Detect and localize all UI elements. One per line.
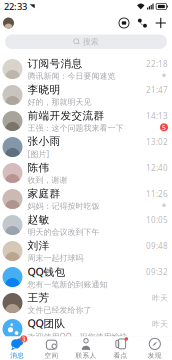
staticText: 搜索 <box>83 37 99 47</box>
staticText: 看点 <box>113 351 127 360</box>
staticText: 订阅号消息 <box>27 57 82 70</box>
button[interactable]: 3 <box>0 336 34 360</box>
staticText: 10:05 <box>146 215 168 225</box>
button[interactable]: 陈伟 <box>0 160 172 186</box>
staticText: 收到，谢谢 <box>27 175 67 185</box>
staticText: QQ钱包 <box>27 264 65 279</box>
staticText: 5 <box>162 123 166 132</box>
button[interactable]: 张小雨 <box>0 134 172 160</box>
staticText: 前端开发交流群 <box>27 109 104 122</box>
button[interactable]: Profile <box>1 13 18 32</box>
staticText: 11:26 <box>146 189 168 199</box>
staticText: 14:13 <box>146 111 168 121</box>
button[interactable]: 发现 <box>138 336 172 360</box>
button[interactable]: 李晓明 <box>0 82 172 108</box>
staticText: 09:48 <box>146 241 168 251</box>
staticText: 09:32 <box>146 267 168 277</box>
button[interactable]: 搜索 <box>0 33 172 56</box>
button[interactable]: QQ团队 <box>0 316 172 342</box>
button[interactable]: 联系人 <box>69 336 103 360</box>
button[interactable]: Scan <box>115 14 133 32</box>
staticText: [图片] <box>27 149 49 159</box>
staticText: 09:02 <box>146 345 168 355</box>
staticText: 好的，那就明天见 <box>27 97 91 107</box>
button[interactable]: Calls <box>133 14 151 32</box>
staticText: 您有一笔新的到账通知 <box>27 280 107 289</box>
button[interactable]: 家庭群 <box>0 186 172 212</box>
staticText: 13:02 <box>146 137 168 147</box>
staticText: 妈妈：记得按时吃饭 <box>27 201 99 211</box>
button[interactable]: QQ钱包 <box>0 264 172 290</box>
staticText: 消息 <box>10 351 24 360</box>
button[interactable]: 赵敏 <box>0 212 172 238</box>
staticText: 王芳 <box>27 291 49 304</box>
staticText: 空间 <box>45 351 59 360</box>
staticText: 3 <box>22 334 26 343</box>
button[interactable]: 前端开发交流群 <box>0 108 172 134</box>
staticText: QQ团队 <box>27 316 65 330</box>
staticText: 家庭群 <box>27 187 60 200</box>
staticText: 张小雨 <box>27 135 60 148</box>
staticText: 12:40 <box>146 163 168 173</box>
staticText: 文件已经发给你了 <box>27 305 91 315</box>
staticText: 发现 <box>148 351 162 360</box>
staticText: 刘洋 <box>27 239 49 252</box>
button[interactable]: 刘洋 <box>0 238 172 264</box>
staticText: 22:33 <box>4 0 27 13</box>
staticText: 21:47 <box>146 85 168 95</box>
button[interactable]: 订阅号消息 <box>0 56 172 82</box>
staticText: 上海我们的故事 <box>27 343 104 356</box>
button[interactable]: 看点 <box>103 336 138 360</box>
staticText: 吴涛：周末活动报名开始啦 <box>27 357 123 360</box>
staticText: 昨天 <box>152 319 168 329</box>
staticText: 腾讯新闻：今日要闻速览 <box>27 71 115 81</box>
staticText: 王强：这个问题我来看一下 <box>27 123 123 133</box>
staticText: 22:18 <box>146 59 168 69</box>
staticText: 欢迎使用QQ，祝您使用愉快 <box>27 331 127 342</box>
button[interactable]: 空间 <box>34 336 69 360</box>
staticText: 昨天 <box>152 293 168 303</box>
staticText: 陈伟 <box>27 161 49 174</box>
button[interactable]: Add <box>151 14 170 32</box>
staticText: 联系人 <box>75 351 96 360</box>
button[interactable]: 王芳 <box>0 290 172 316</box>
button[interactable]: 上海我们的故事 <box>0 342 172 360</box>
staticText: 周末一起打球吗 <box>27 253 83 263</box>
staticText: 李晓明 <box>27 83 60 96</box>
staticText: 赵敏 <box>27 213 49 226</box>
staticText: 明天的会议改到下午 <box>27 227 99 237</box>
